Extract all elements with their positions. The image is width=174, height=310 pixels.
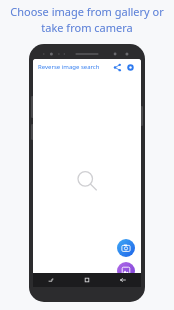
- button[interactable]: Home: [69, 273, 105, 287]
- button[interactable]: Recent apps: [33, 273, 69, 287]
- staticText: Choose image from gallery or: [10, 4, 164, 19]
- staticText: Reverse image search: [38, 63, 100, 71]
- button[interactable]: Back: [105, 273, 141, 287]
- button[interactable]: Choose image from gallery: [117, 262, 135, 280]
- staticText: take from camera: [41, 20, 133, 35]
- button[interactable]: Take photo from camera: [117, 239, 135, 257]
- button[interactable]: Share: [112, 62, 123, 73]
- button[interactable]: Settings: [125, 62, 136, 73]
